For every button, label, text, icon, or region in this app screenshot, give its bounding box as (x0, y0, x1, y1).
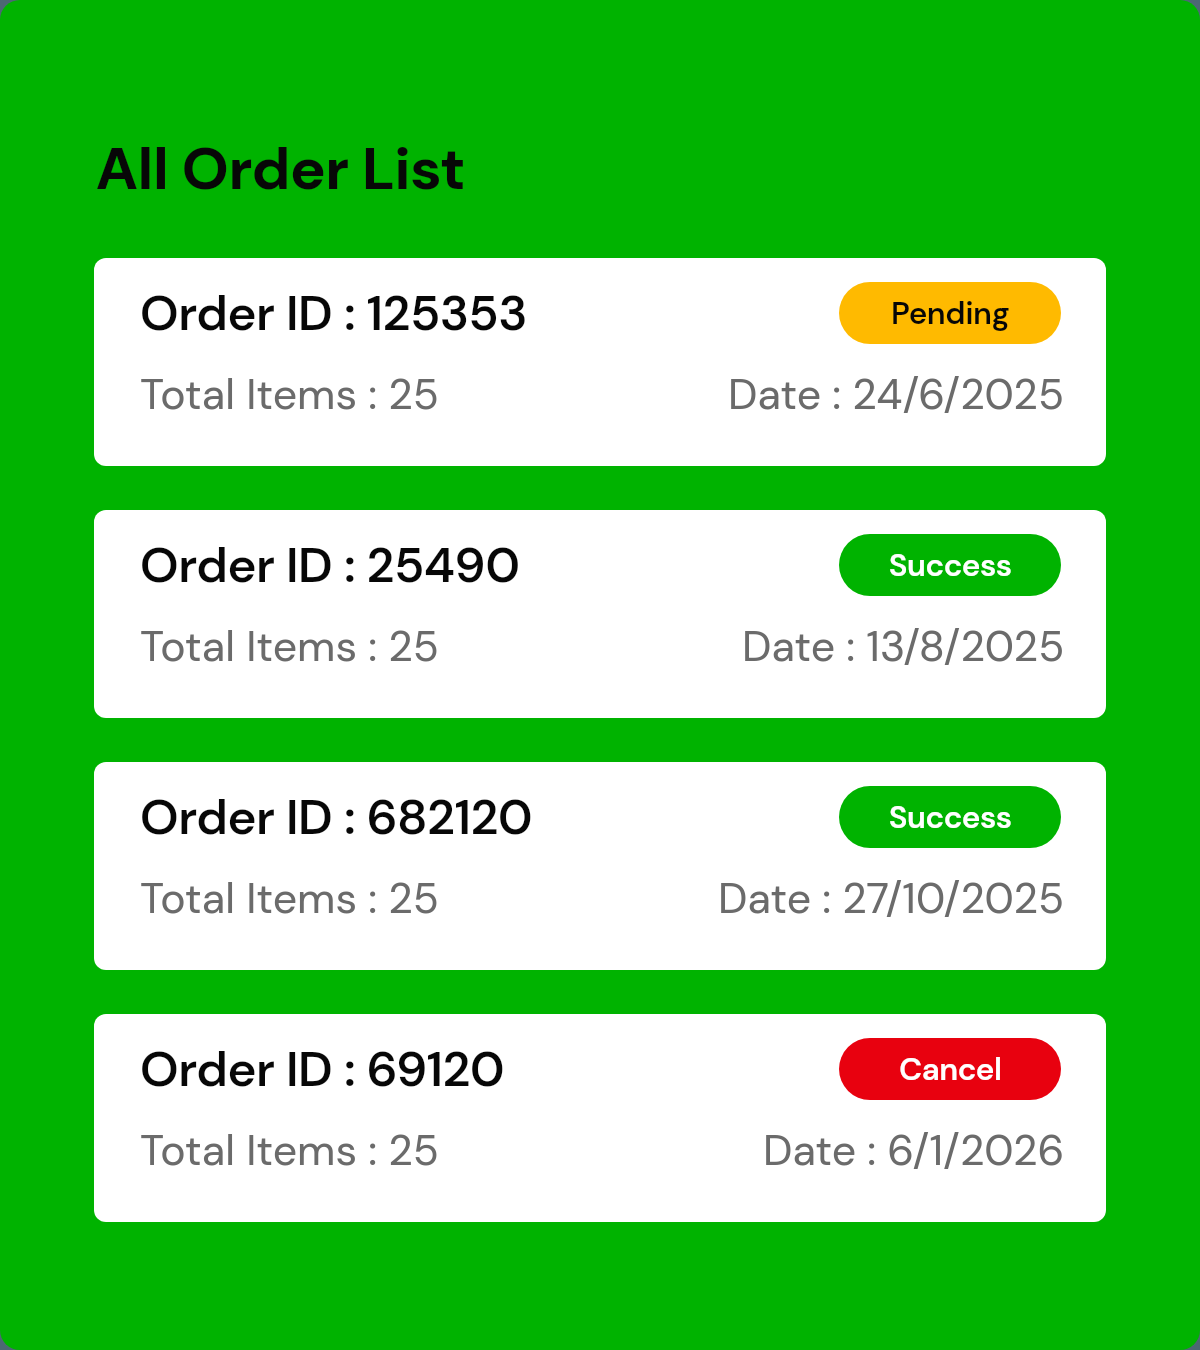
staticText: Order ID : 682120 (140, 785, 533, 849)
staticText: Order ID : 125353 (140, 281, 528, 345)
button[interactable]: Pending (839, 282, 1061, 344)
button[interactable]: Order ID : 125353 (94, 258, 1106, 466)
button[interactable]: Success (839, 534, 1061, 596)
button[interactable]: Order ID : 25490 (94, 510, 1106, 718)
staticText: Total Items : 25 (140, 619, 439, 675)
button[interactable]: Order ID : 682120 (94, 762, 1106, 970)
staticText: Success (889, 545, 1012, 586)
staticText: Pending (891, 293, 1010, 334)
staticText: Success (889, 797, 1012, 838)
staticText: All Order List (96, 130, 466, 208)
staticText: Date : 13/8/2025 (742, 619, 1065, 675)
button[interactable]: Cancel (839, 1038, 1061, 1100)
button[interactable]: Success (839, 786, 1061, 848)
staticText: Date : 27/10/2025 (718, 871, 1065, 927)
staticText: Order ID : 25490 (140, 533, 520, 597)
staticText: Cancel (899, 1049, 1002, 1090)
staticText: Date : 24/6/2025 (728, 367, 1065, 423)
staticText: Total Items : 25 (140, 871, 439, 927)
staticText: Order ID : 69120 (140, 1037, 505, 1101)
staticText: Total Items : 25 (140, 367, 439, 423)
button[interactable]: Order ID : 69120 (94, 1014, 1106, 1222)
button[interactable]: All Order List (96, 130, 466, 208)
staticText: Date : 6/1/2026 (763, 1123, 1065, 1179)
staticText: Total Items : 25 (140, 1123, 439, 1179)
